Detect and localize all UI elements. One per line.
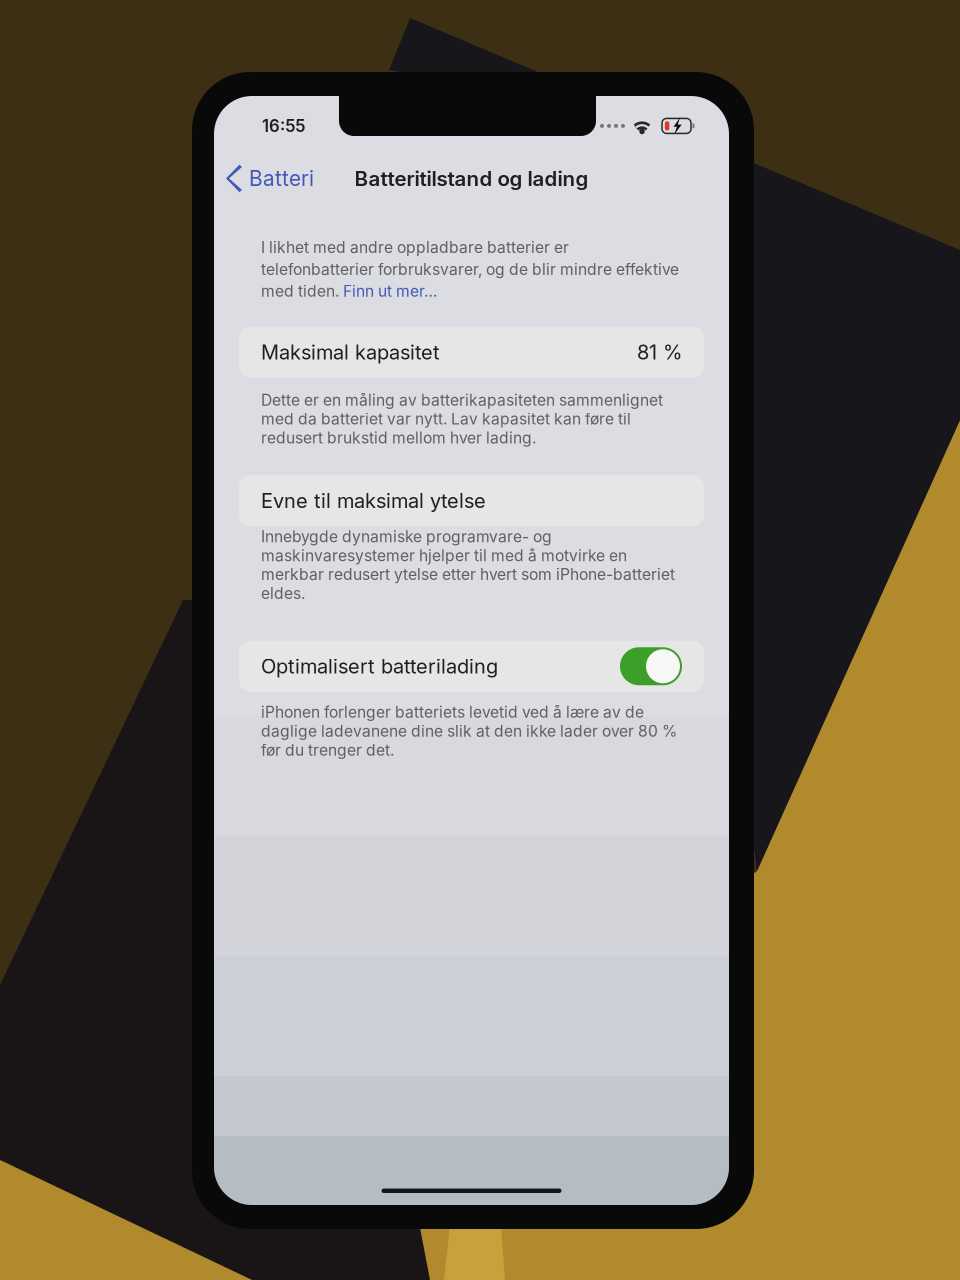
button[interactable]: Evne til maksimal ytelse	[214, 475, 729, 526]
staticText: Maksimal kapasitet	[261, 340, 440, 364]
button[interactable]: Finn ut mer…	[343, 282, 437, 301]
staticText: Innebygde dynamiske programvare- og mask…	[261, 527, 675, 603]
staticText: med tiden.	[261, 282, 343, 301]
staticText: I likhet med andre oppladbare batterier …	[261, 238, 569, 257]
staticText: Finn ut mer…	[343, 282, 437, 301]
staticText: 16:55	[262, 116, 305, 136]
staticText: Optimalisert batterilading	[261, 654, 498, 678]
staticText: 81 %	[637, 340, 682, 364]
button[interactable]: Batteri	[214, 159, 314, 198]
staticText: iPhonen forlenger batteriets levetid ved…	[261, 703, 677, 759]
staticText: Batteri	[249, 166, 314, 191]
button[interactable]: Maksimal kapasitet	[214, 327, 729, 378]
staticText: Dette er en måling av batterikapasiteten…	[261, 391, 663, 447]
staticText: Evne til maksimal ytelse	[261, 489, 486, 513]
staticText: telefonbatterier forbruksvarer, og de bl…	[261, 260, 679, 279]
button[interactable]: Optimalisert batterilading	[214, 641, 729, 692]
staticText: Batteritilstand og lading	[354, 166, 588, 191]
